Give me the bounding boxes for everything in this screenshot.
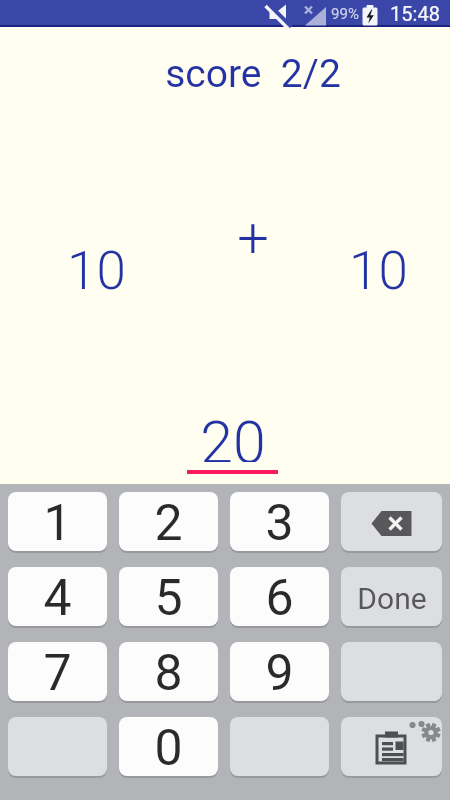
staticText: 6 — [265, 569, 294, 626]
staticText: 5 — [154, 569, 183, 626]
staticText: 20 — [200, 408, 266, 462]
button[interactable] — [341, 492, 442, 551]
button[interactable]: 9 — [230, 642, 329, 701]
staticText: 8 — [154, 644, 183, 701]
staticText: + — [237, 205, 269, 255]
staticText: 10 — [67, 240, 126, 290]
button[interactable]: 0 — [119, 717, 218, 776]
button[interactable]: 4 — [8, 567, 107, 626]
button[interactable]: 1 — [8, 492, 107, 551]
staticText: Done — [357, 581, 427, 616]
staticText: 7 — [43, 644, 72, 701]
staticText: 4 — [43, 569, 72, 626]
button[interactable]: 7 — [8, 642, 107, 701]
staticText: 1 — [43, 494, 72, 551]
staticText: 10 — [349, 240, 408, 290]
button[interactable]: 8 — [119, 642, 218, 701]
button[interactable]: 5 — [119, 567, 218, 626]
button[interactable]: 3 — [230, 492, 329, 551]
staticText: 99% — [331, 5, 359, 23]
staticText: 9 — [265, 644, 294, 701]
staticText: 3 — [265, 494, 294, 551]
button[interactable]: 2 — [119, 492, 218, 551]
button[interactable]: 20 — [182, 408, 283, 462]
staticText: score 2/2 — [165, 51, 341, 97]
button[interactable] — [341, 642, 442, 701]
button[interactable]: 6 — [230, 567, 329, 626]
staticText: 15:48 — [390, 2, 440, 25]
button[interactable] — [8, 717, 107, 776]
staticText: 2 — [154, 494, 183, 551]
button[interactable] — [230, 717, 329, 776]
button[interactable] — [341, 717, 442, 776]
button[interactable]: Done — [341, 567, 442, 626]
staticText: 0 — [154, 719, 183, 776]
